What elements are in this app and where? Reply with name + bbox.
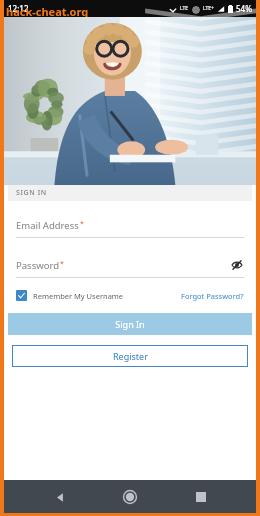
button[interactable]: Home [115,482,145,512]
staticText: 12:12 [8,3,29,14]
button[interactable]: Sign In [8,313,252,335]
button[interactable]: Recent apps [186,482,216,512]
staticText: SIGN IN [16,188,47,198]
button[interactable]: Forgot Password? [181,291,244,301]
staticText: 54% [236,3,252,14]
staticText: Email Address [16,219,79,232]
staticText: Register [113,350,148,362]
staticText: Password [16,259,59,272]
button[interactable]: Back [45,482,75,512]
button[interactable]: Remember My Username [16,290,124,301]
staticText: Sign In [115,318,145,330]
button[interactable]: Show password [230,258,244,272]
staticText: Remember My Username [33,291,124,301]
staticText: * [60,259,64,269]
staticText: Forgot Password? [181,291,244,301]
staticText: LTE [180,5,189,12]
button[interactable]: Register [12,345,248,367]
staticText: * [80,219,84,229]
staticText: hack-cheat.org [6,4,89,17]
staticText: LTE+ [203,5,214,12]
